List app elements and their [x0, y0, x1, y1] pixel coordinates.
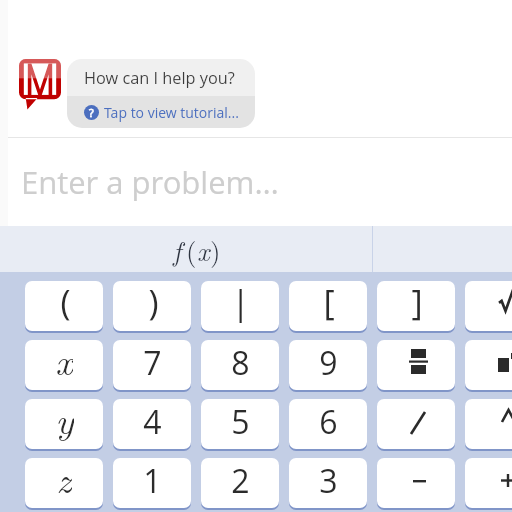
- button[interactable]: 5: [201, 399, 279, 449]
- staticText: [: [323, 281, 335, 325]
- button[interactable]: 2: [201, 458, 279, 508]
- staticText: 7: [143, 341, 162, 385]
- staticText: x: [197, 231, 210, 269]
- button[interactable]: How can I help you?: [67, 59, 255, 128]
- button[interactable]: ]: [377, 281, 455, 331]
- button[interactable]: [465, 399, 512, 449]
- staticText: Enter a problem…: [21, 161, 279, 203]
- button[interactable]: 6: [289, 399, 367, 449]
- staticText: Tap to view tutorial...: [104, 103, 240, 122]
- staticText: 1: [143, 459, 162, 503]
- staticText: (: [60, 281, 71, 325]
- button[interactable]: [465, 281, 512, 331]
- button[interactable]: 8: [201, 340, 279, 390]
- staticText: (: [186, 231, 197, 269]
- button[interactable]: 9: [289, 340, 367, 390]
- staticText: 5: [231, 400, 250, 444]
- staticText: x: [55, 340, 73, 382]
- button[interactable]: [377, 458, 455, 508]
- staticText: 9: [319, 341, 338, 385]
- staticText: z: [56, 458, 72, 500]
- staticText: 4: [143, 400, 162, 444]
- staticText: How can I help you?: [84, 67, 235, 89]
- staticText: y: [55, 399, 74, 441]
- button[interactable]: |: [201, 281, 279, 331]
- staticText: ]: [411, 281, 423, 325]
- staticText: ?: [89, 105, 94, 120]
- button[interactable]: [465, 458, 512, 508]
- button[interactable]: ): [113, 281, 191, 331]
- staticText: |: [231, 281, 250, 325]
- staticText: 6: [319, 400, 338, 444]
- button[interactable]: [377, 399, 455, 449]
- button[interactable]: [377, 340, 455, 390]
- button[interactable]: f: [0, 226, 372, 272]
- button[interactable]: 4: [113, 399, 191, 449]
- button[interactable]: 3: [289, 458, 367, 508]
- button[interactable]: [465, 340, 512, 390]
- button[interactable]: y: [25, 399, 103, 449]
- button[interactable]: x: [25, 340, 103, 390]
- staticText: f: [173, 231, 182, 269]
- staticText: ): [148, 281, 159, 325]
- staticText: ): [210, 231, 221, 269]
- button[interactable]: (: [25, 281, 103, 331]
- button[interactable]: 1: [113, 458, 191, 508]
- button[interactable]: 7: [113, 340, 191, 390]
- staticText: 8: [231, 341, 250, 385]
- button[interactable]: [: [289, 281, 367, 331]
- staticText: 2: [231, 459, 250, 503]
- staticText: 3: [319, 459, 338, 503]
- button[interactable]: z: [25, 458, 103, 508]
